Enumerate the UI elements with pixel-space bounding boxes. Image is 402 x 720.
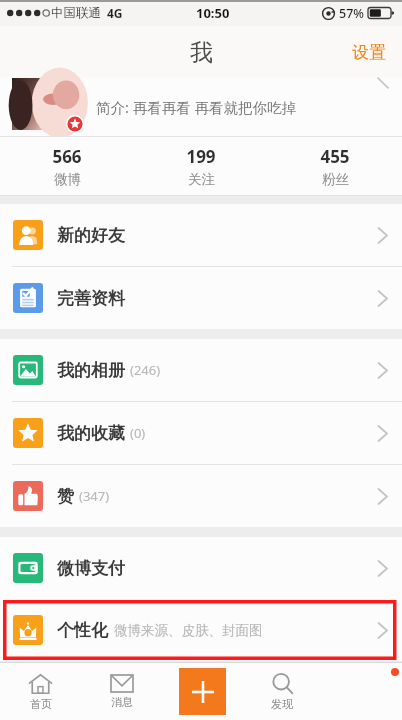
staticText: 566 [52, 145, 82, 168]
staticText: (347) [79, 487, 110, 505]
staticText: 新的好友 [57, 225, 125, 246]
staticText: 57% [339, 5, 364, 22]
staticText: 我的收藏 [57, 423, 125, 444]
staticText: 设置 [352, 42, 386, 63]
staticText: 我的相册 [57, 360, 125, 381]
staticText: (0) [130, 424, 146, 442]
button[interactable]: 微博支付 [0, 537, 402, 599]
button[interactable]: 我的相册 [0, 339, 402, 401]
staticText: 关注 [188, 171, 215, 188]
staticText: 个性化 [57, 620, 108, 641]
staticText: 我 [190, 38, 213, 67]
staticText: 10:50 [196, 4, 230, 22]
button[interactable]: 新的好友 [0, 204, 402, 266]
button[interactable]: 完善资料 [0, 267, 402, 329]
staticText: 首页 [30, 697, 52, 711]
staticText: (246) [130, 361, 161, 379]
button[interactable]: 消息 [81, 663, 162, 720]
staticText: 赞 [57, 486, 74, 507]
button[interactable]: 发现 [242, 663, 322, 720]
button[interactable]: 199 [134, 137, 268, 195]
staticText: 简介: 再看再看 再看就把你吃掉 [96, 97, 296, 117]
staticText: 微博 [54, 171, 81, 188]
button[interactable]: 我的收藏 [0, 402, 402, 464]
button[interactable]: Compose [179, 668, 226, 715]
staticText: 微博来源、皮肤、封面图 [114, 622, 263, 639]
button[interactable]: 赞 [0, 465, 402, 527]
button[interactable]: 455 [268, 137, 402, 195]
staticText: 粉丝 [322, 171, 349, 188]
button[interactable]: 566 [0, 137, 134, 195]
staticText: 完善资料 [57, 288, 125, 309]
staticText: 199 [186, 145, 216, 168]
staticText: 发现 [271, 697, 293, 711]
button[interactable]: 我 [322, 663, 402, 720]
button[interactable]: 个性化 [0, 599, 402, 661]
button[interactable]: 简介: 再看再看 再看就把你吃掉 [0, 78, 402, 136]
button[interactable]: 首页 [0, 663, 81, 720]
staticText: 4G [107, 5, 123, 21]
button[interactable]: 设置 [336, 32, 402, 73]
staticText: 中国联通 [51, 5, 101, 21]
staticText: 消息 [111, 695, 133, 709]
staticText: 微博支付 [57, 558, 125, 579]
staticText: 455 [320, 145, 350, 168]
